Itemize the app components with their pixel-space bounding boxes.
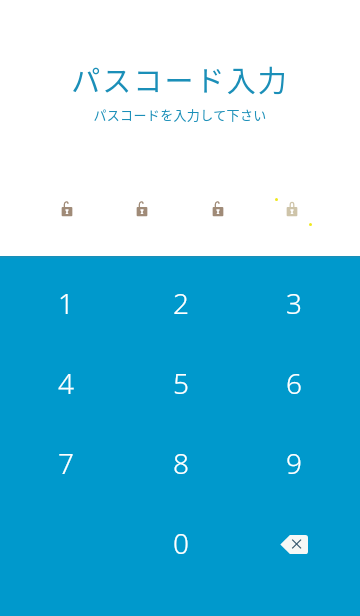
staticText: 7 [58, 444, 74, 482]
button[interactable] [240, 436, 360, 526]
button[interactable] [120, 436, 240, 526]
staticText: 9 [286, 444, 302, 482]
staticText: 8 [173, 444, 189, 482]
staticText: パスコードを入力して下さい [93, 105, 267, 124]
button[interactable] [240, 256, 360, 346]
staticText: 0 [173, 524, 189, 562]
staticText: 3 [286, 284, 302, 322]
button[interactable]: Backspace [240, 526, 360, 616]
button[interactable] [120, 346, 240, 436]
button[interactable] [0, 346, 120, 436]
button[interactable] [120, 256, 240, 346]
staticText: 5 [173, 364, 189, 402]
staticText: 4 [58, 364, 74, 402]
button[interactable] [0, 256, 120, 346]
staticText: 6 [286, 364, 302, 402]
staticText: パスコード入力 [71, 58, 289, 100]
button[interactable] [0, 436, 120, 526]
staticText: 1 [58, 284, 74, 322]
button[interactable] [240, 346, 360, 436]
staticText: 2 [173, 284, 189, 322]
button[interactable] [120, 526, 240, 616]
